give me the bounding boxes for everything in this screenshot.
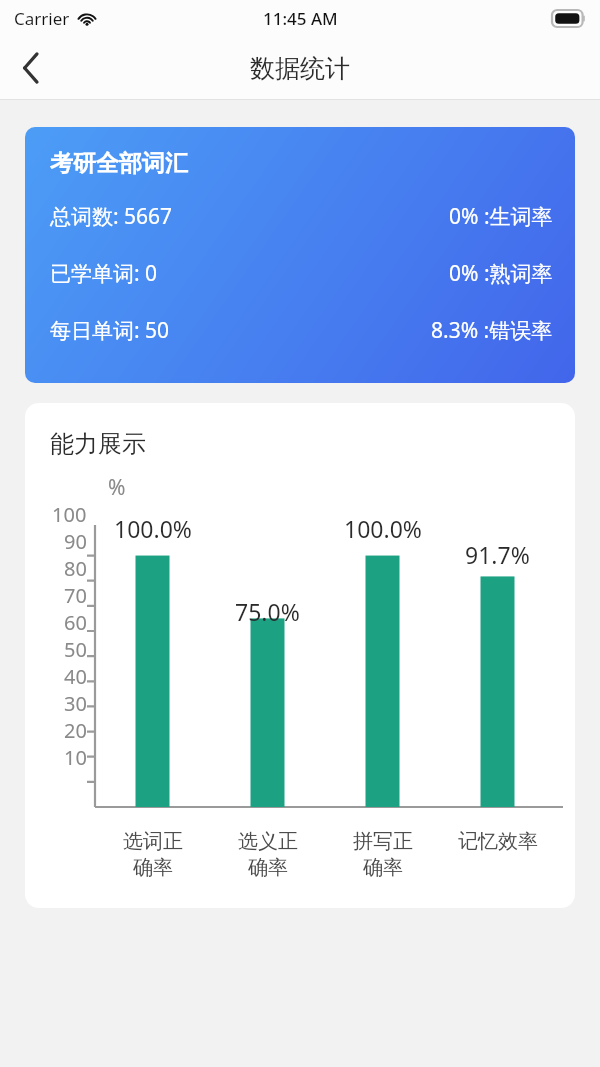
staticText: 选词正 确率 <box>123 829 183 880</box>
staticText: 考研全部词汇 <box>50 149 188 178</box>
staticText: 每日单词: 50 <box>50 316 170 345</box>
staticText: 8.3% :错误率 <box>431 316 553 345</box>
staticText: 100.0% <box>344 513 422 544</box>
button[interactable]: 能力展示 <box>25 403 575 908</box>
staticText: 选义正 确率 <box>238 829 298 880</box>
button[interactable]: Back <box>0 36 62 100</box>
staticText: % <box>108 473 126 502</box>
staticText: 10 <box>64 744 87 771</box>
staticText: Carrier <box>14 7 70 30</box>
staticText: 0% :熟词率 <box>449 259 553 288</box>
staticText: 11:45 AM <box>263 7 338 30</box>
staticText: 75.0% <box>235 596 300 627</box>
staticText: 20 <box>64 717 87 744</box>
staticText: 记忆效率 <box>458 829 538 854</box>
staticText: 40 <box>64 663 87 690</box>
staticText: 拼写正 确率 <box>353 829 413 880</box>
staticText: 60 <box>64 609 87 636</box>
staticText: 0% :生词率 <box>449 202 553 231</box>
staticText: 总词数: 5667 <box>50 202 173 231</box>
staticText: 30 <box>64 690 87 717</box>
staticText: 90 <box>64 528 87 555</box>
button[interactable]: 考研全部词汇 <box>25 127 575 383</box>
staticText: 80 <box>64 555 87 582</box>
staticText: 50 <box>64 636 87 663</box>
staticText: 能力展示 <box>50 429 146 459</box>
staticText: 数据统计 <box>250 53 350 84</box>
staticText: 100 <box>52 501 87 528</box>
staticText: 70 <box>64 582 87 609</box>
staticText: 91.7% <box>465 539 530 570</box>
staticText: 已学单词: 0 <box>50 259 158 288</box>
staticText: 100.0% <box>114 513 192 544</box>
